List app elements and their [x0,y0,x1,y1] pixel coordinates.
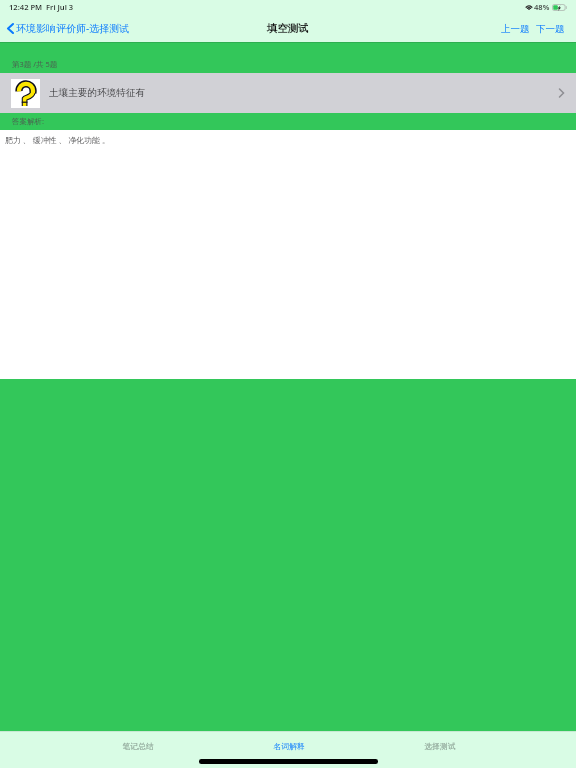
staticText: Fri Jul 3 [46,2,74,12]
staticText: 上一题 [501,23,530,35]
staticText: 笔记总结 [122,741,154,751]
staticText: 环境影响评价师-选择测试 [16,21,130,35]
button[interactable]: 下一题 [536,23,565,35]
staticText: 下一题 [536,23,565,35]
button[interactable]: 选择测试 [364,735,515,757]
button[interactable]: 笔记总结 [62,735,213,757]
button[interactable]: 返回 环境影响评价师-选择测试 [0,21,136,35]
button[interactable]: 土壤主要的环境特征有 [0,73,576,113]
staticText: 名词解释 [273,741,305,751]
staticText: 第3题 /共 5题 [12,59,58,69]
staticText: 48% [534,2,550,12]
staticText: 填空测试 [267,22,309,35]
staticText: 土壤主要的环境特征有 [49,87,145,99]
button[interactable]: 上一题 [501,23,530,35]
staticText: 12:42 PM [9,2,43,12]
staticText: 答案解析: [12,116,45,126]
button[interactable]: 名词解释 [213,735,364,757]
staticText: 选择测试 [424,741,456,751]
staticText: 肥力 、 缓冲性 、 净化功能 。 [5,135,110,146]
